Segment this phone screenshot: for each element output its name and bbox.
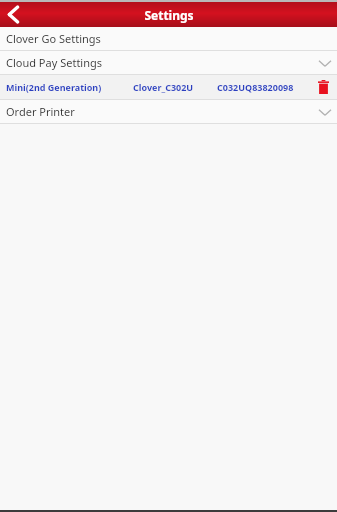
button[interactable]: Clover Go Settings <box>0 27 337 50</box>
button[interactable]: Order Printer <box>0 100 337 123</box>
button[interactable]: Back <box>0 2 26 27</box>
staticText: C032UQ83820098 <box>217 81 294 93</box>
staticText: Cloud Pay Settings <box>6 55 103 70</box>
button[interactable]: Cloud Pay Settings <box>0 51 337 74</box>
staticText: Settings <box>144 7 194 23</box>
staticText: Clover Go Settings <box>6 31 101 46</box>
staticText: Mini(2nd Generation) <box>6 81 102 93</box>
staticText: Order Printer <box>6 104 75 119</box>
staticText: Clover_C302U <box>133 81 194 93</box>
button[interactable]: Mini(2nd Generation) <box>0 75 337 99</box>
button[interactable]: Delete device <box>315 79 331 95</box>
